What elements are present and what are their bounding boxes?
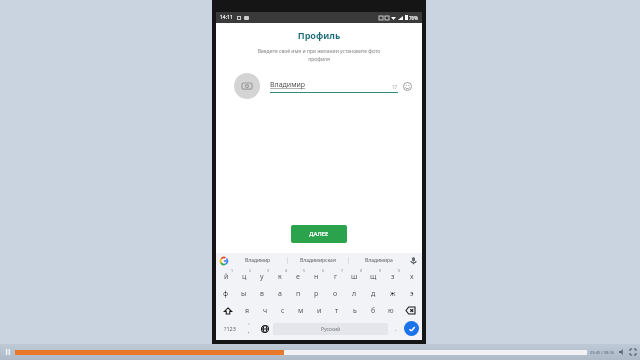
staticText: с [281,306,285,316]
button[interactable]: ж [383,285,402,302]
button[interactable]: е [289,268,307,285]
button[interactable]: ю [382,302,400,319]
staticText: ш [351,272,358,282]
staticText: в [260,289,264,299]
button[interactable]: Эмодзи [403,82,412,91]
button[interactable]: ь [346,302,364,319]
staticText: г [334,272,338,282]
button[interactable]: Готово [404,321,419,336]
staticText: Владимир [245,257,271,264]
button[interactable]: ф [217,285,235,302]
button[interactable]: г [326,268,345,285]
button[interactable]: Запятая [241,319,257,338]
staticText: 6 [322,268,325,273]
button[interactable]: с [274,302,292,319]
button[interactable]: м [292,302,310,319]
staticText: д [371,289,376,299]
button[interactable]: Пауза [3,347,13,357]
button[interactable]: Перемотка [15,350,587,355]
staticText: ь [353,306,357,316]
staticText: б [371,306,376,316]
button[interactable]: ч [256,302,274,319]
staticText: 2 [249,268,252,273]
staticText: 9 [379,268,382,273]
staticText: з [391,272,395,282]
button[interactable]: я [238,302,256,319]
button[interactable]: Владимирская [288,253,348,268]
button[interactable]: д [364,285,383,302]
staticText: ч [263,306,268,316]
staticText: 1 [231,268,234,273]
staticText: , [248,327,250,335]
button[interactable]: Громкость [618,348,626,356]
button[interactable]: Владимира [349,253,409,268]
button[interactable]: б [364,302,382,319]
button[interactable]: Голосовой ввод [409,256,418,265]
button[interactable]: ц [235,268,253,285]
button[interactable]: Сменить язык [257,319,273,338]
staticText: Профиль [216,29,422,41]
button[interactable]: Выбрать фото профиля [234,73,260,99]
button[interactable]: р [307,285,326,302]
staticText: 7 [341,268,344,273]
staticText: ° [248,322,250,327]
staticText: Введите своё имя и при желании установит… [230,48,408,63]
staticText: 8 [360,268,363,273]
button[interactable]: ш [345,268,364,285]
staticText: 14:11 [220,14,233,21]
staticText: м [298,306,304,316]
button[interactable]: п [289,285,307,302]
staticText: щ [370,272,377,282]
staticText: т [335,306,339,316]
staticText: л [352,289,357,299]
button[interactable]: к [271,268,289,285]
staticText: н [314,272,319,282]
button[interactable]: т [328,302,346,319]
button[interactable]: л [345,285,364,302]
staticText: э [410,289,414,299]
staticText: о [333,289,338,299]
button[interactable]: ы [235,285,253,302]
staticText: ж [390,289,396,299]
staticText: Русский [321,326,341,333]
staticText: к [278,272,282,282]
button[interactable]: а [271,285,289,302]
button[interactable]: ?123 [219,319,241,338]
staticText: Владимир [270,80,306,90]
button[interactable]: э [402,285,421,302]
button[interactable]: х [402,268,421,285]
button[interactable]: Shift [217,302,238,319]
button[interactable]: у [253,268,271,285]
staticText: ?123 [224,325,236,332]
button[interactable]: з [383,268,402,285]
staticText: п [296,289,301,299]
staticText: 3 [267,268,270,273]
button[interactable]: ДАЛЕЕ [291,225,347,243]
staticText: ы [241,289,247,299]
staticText: ф [223,289,229,299]
staticText: ДАЛЕЕ [309,230,329,238]
staticText: я [245,306,250,316]
staticText: ю [388,306,394,316]
button[interactable]: Русский [273,323,388,335]
button[interactable]: щ [364,268,383,285]
button[interactable]: и [310,302,328,319]
button[interactable]: Google [220,257,228,265]
staticText: ц [242,272,247,282]
button[interactable]: н [307,268,326,285]
button[interactable]: Во весь экран [629,348,637,356]
staticText: е [296,272,300,282]
staticText: р [314,289,319,299]
staticText: 76% [409,15,418,21]
staticText: 0 [398,268,401,273]
button[interactable]: о [326,285,345,302]
staticText: Владимирская [300,257,336,264]
button[interactable]: й [217,268,235,285]
staticText: 09:45 / 08:06 [590,350,615,355]
staticText: х [410,272,414,282]
button[interactable]: Владимир [228,253,287,268]
button[interactable]: в [253,285,271,302]
staticText: 5 [303,268,306,273]
button[interactable]: Backspace [400,302,421,319]
